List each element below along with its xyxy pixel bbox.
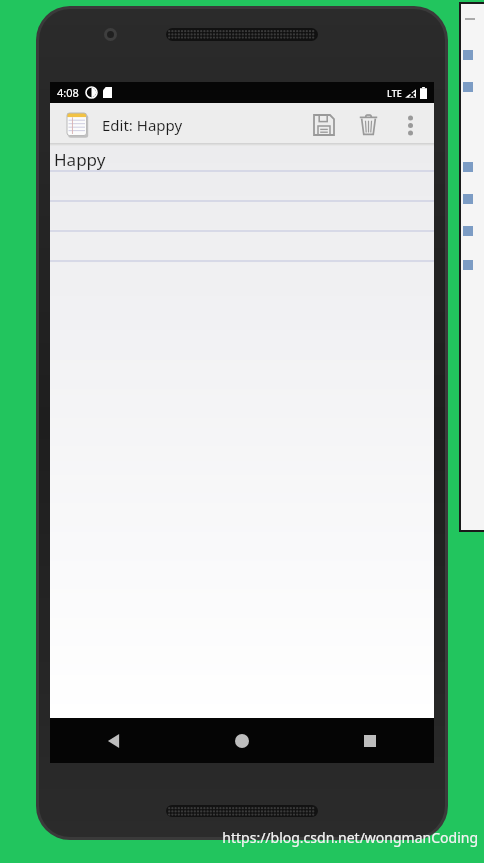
button[interactable]: More options: [390, 105, 430, 145]
staticText: 4:08: [57, 85, 79, 100]
button[interactable]: Happy: [50, 146, 434, 718]
staticText: https://blog.csdn.net/wongmanCoding: [222, 828, 478, 847]
button[interactable]: Back: [50, 718, 178, 763]
staticText: Happy: [54, 148, 106, 171]
staticText: LTE: [387, 87, 402, 99]
button[interactable]: Save: [302, 103, 346, 146]
button[interactable]: Notes app: [60, 108, 94, 142]
button[interactable]: Delete: [346, 103, 390, 146]
button[interactable]: Home: [178, 718, 306, 763]
staticText: Edit: Happy: [102, 115, 183, 135]
button[interactable]: Recent apps: [306, 718, 434, 763]
